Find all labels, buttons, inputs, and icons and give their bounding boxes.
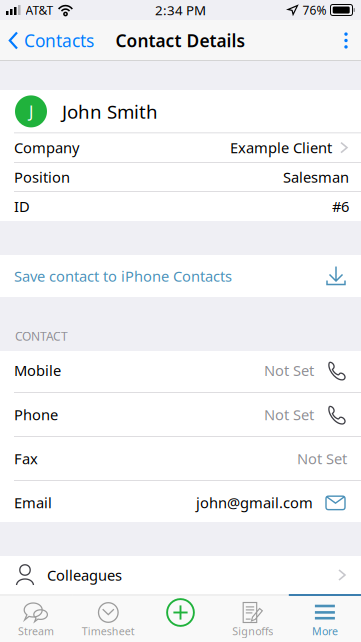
staticText: Signoffs [232, 624, 273, 638]
staticText: Contacts [24, 29, 94, 52]
button[interactable]: Phone [0, 393, 361, 436]
button[interactable]: Stream [0, 594, 72, 642]
staticText: CONTACT [15, 328, 68, 344]
staticText: J [29, 101, 33, 122]
staticText: Timesheet [82, 624, 135, 638]
staticText: Contact Details [115, 29, 245, 52]
button[interactable]: ID [0, 192, 361, 221]
button[interactable]: Mobile [0, 349, 361, 392]
staticText: Company [14, 138, 79, 157]
button[interactable]: Position [0, 163, 361, 191]
staticText: #6 [332, 197, 349, 216]
staticText: Salesman [283, 167, 349, 187]
staticText: john@gmail.com [196, 493, 313, 512]
staticText: 2:34 PM [155, 1, 206, 19]
button[interactable]: More options [331, 20, 361, 60]
staticText: Not Set [297, 449, 347, 468]
staticText: Mobile [14, 361, 61, 380]
staticText: ID [14, 197, 30, 216]
staticText: Phone [14, 405, 58, 424]
button[interactable]: Timesheet [72, 594, 144, 642]
button[interactable]: More [289, 594, 361, 642]
button[interactable]: Contacts [0, 20, 94, 61]
staticText: Email [14, 493, 52, 512]
button[interactable]: Save contact to iPhone Contacts [0, 255, 361, 297]
staticText: Not Set [264, 405, 314, 424]
staticText: More [312, 624, 338, 638]
staticText: AT&T [25, 2, 53, 18]
staticText: Stream [18, 624, 54, 638]
staticText: Not Set [264, 361, 314, 380]
staticText: Position [14, 167, 70, 187]
staticText: Save contact to iPhone Contacts [14, 266, 232, 286]
button[interactable]: Company [0, 133, 361, 162]
staticText: Colleagues [47, 565, 122, 585]
staticText: Example Client [230, 138, 332, 157]
button[interactable]: Fax [0, 437, 361, 480]
button[interactable]: Email [0, 481, 361, 524]
button[interactable] [144, 594, 217, 642]
staticText: Fax [14, 449, 38, 468]
staticText: 76% [302, 2, 326, 18]
button[interactable]: Signoffs [217, 594, 289, 642]
staticText: John Smith [62, 99, 158, 124]
button[interactable]: Colleagues [0, 556, 361, 594]
